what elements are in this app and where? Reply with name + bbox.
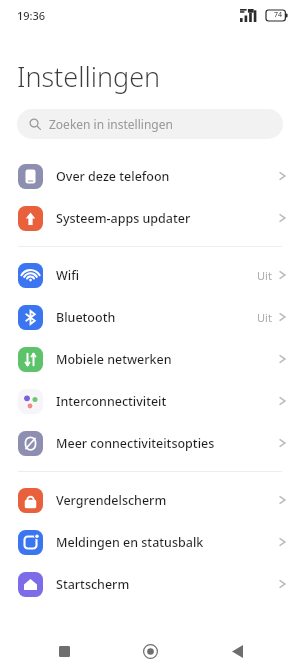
staticText: 19:36 [17, 8, 46, 23]
button[interactable]: Zoeken in instellingen [17, 109, 283, 139]
button[interactable]: Bluetooth [0, 296, 300, 338]
staticText: Over deze telefoon [56, 168, 170, 185]
button[interactable]: Meldingen en statusbalk [0, 521, 300, 563]
staticText: Uit [257, 268, 272, 283]
staticText: 74 [274, 10, 283, 20]
button[interactable]: Systeem-apps updater [0, 197, 300, 239]
button[interactable]: Interconnectiviteit [0, 380, 300, 422]
staticText: Meer connectiviteitsopties [56, 435, 215, 452]
button[interactable]: Recent apps [41, 634, 87, 668]
staticText: Interconnectiviteit [56, 393, 167, 410]
staticText: Mobiele netwerken [56, 351, 172, 368]
staticText: Zoeken in instellingen [49, 116, 173, 132]
staticText: Wifi [56, 267, 79, 284]
button[interactable]: Wifi [0, 254, 300, 296]
button[interactable]: Startscherm [0, 563, 300, 605]
button[interactable]: Vergrendelscherm [0, 479, 300, 521]
button[interactable]: Home [127, 634, 173, 668]
staticText: Bluetooth [56, 309, 116, 326]
button[interactable]: Back [214, 634, 260, 668]
staticText: Startscherm [56, 576, 130, 593]
staticText: Uit [257, 310, 272, 325]
staticText: Instellingen [17, 58, 161, 95]
staticText: Vergrendelscherm [56, 492, 167, 509]
staticText: Meldingen en statusbalk [56, 534, 204, 551]
button[interactable]: Over deze telefoon [0, 155, 300, 197]
staticText: Systeem-apps updater [56, 210, 191, 227]
button[interactable]: Mobiele netwerken [0, 338, 300, 380]
button[interactable]: Meer connectiviteitsopties [0, 422, 300, 464]
